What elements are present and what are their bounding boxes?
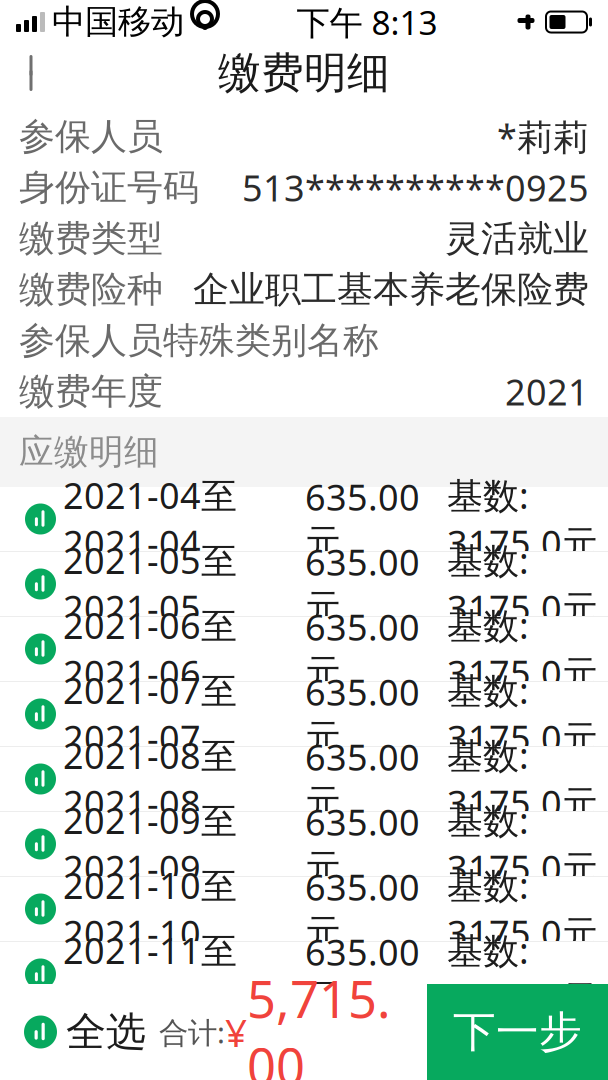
staticText: 基数:3175.0元 [447, 926, 598, 1022]
staticText: 下一步 [453, 1006, 582, 1058]
staticText: 基数:3175.0元 [447, 861, 598, 957]
staticText: 基数:3175.0元 [447, 601, 598, 697]
staticText: 635.00元 [305, 538, 420, 630]
staticText: 下午 8:13 [296, 0, 437, 44]
staticText: 635.00元 [305, 603, 420, 695]
staticText: 635.00元 [305, 473, 420, 565]
button[interactable]: 2021-09至2021-09 [0, 812, 608, 877]
staticText: 全选 [66, 1007, 146, 1056]
button[interactable]: 2021-05至2021-05 [0, 552, 608, 617]
staticText: 635.00元 [305, 798, 420, 890]
staticText: 635.00元 [305, 733, 420, 825]
button[interactable]: 下一步 [427, 984, 608, 1080]
button[interactable]: 2021-08至2021-08 [0, 747, 608, 812]
staticText: 缴费明细 [218, 47, 390, 99]
staticText: 中国移动 [52, 1, 184, 42]
staticText: 缴费类型 [19, 216, 163, 261]
button[interactable]: 返回 [0, 44, 70, 102]
staticText: 5,715.00 [247, 965, 391, 1080]
staticText: 参保人员 [19, 114, 163, 159]
staticText: 基数:3175.0元 [447, 731, 598, 827]
staticText: 缴费年度 [19, 369, 163, 414]
staticText: 2021 [505, 368, 589, 415]
button[interactable]: 2021-06至2021-06 [0, 617, 608, 682]
staticText: 635.00元 [305, 668, 420, 760]
staticText: 基数:3175.0元 [447, 796, 598, 892]
button[interactable]: 2021-11至2021-11 [0, 942, 608, 1007]
staticText: 2021-07至2021-07 [63, 666, 237, 762]
staticText: 2021-04至2021-04 [63, 471, 237, 567]
staticText: 企业职工基本养老保险费 [193, 267, 589, 312]
staticText: 应缴明细 [19, 431, 159, 473]
staticText: 2021-05至2021-05 [63, 536, 237, 632]
staticText: 2021-08至2021-08 [63, 731, 237, 827]
staticText: 513**********0925 [242, 164, 589, 211]
staticText: 参保人员特殊类别名称 [19, 318, 379, 363]
staticText: 2021-11至2021-11 [63, 926, 237, 1022]
staticText: 灵活就业 [445, 216, 589, 261]
button[interactable]: 2021-10至2021-10 [0, 877, 608, 942]
staticText: *莉莉 [497, 113, 589, 160]
staticText: 基数:3175.0元 [447, 471, 598, 567]
staticText: 合计: [159, 1012, 225, 1051]
staticText: ¥ [225, 1006, 247, 1058]
button[interactable]: 全选 [0, 991, 156, 1072]
staticText: 身份证号码 [19, 165, 199, 210]
staticText: 635.00元 [305, 928, 420, 1020]
staticText: 基数:3175.0元 [447, 536, 598, 632]
staticText: 基数:3175.0元 [447, 666, 598, 762]
staticText: 2021-09至2021-09 [63, 796, 237, 892]
staticText: 635.00元 [305, 863, 420, 955]
button[interactable]: 2021-07至2021-07 [0, 682, 608, 747]
staticText: 2021-06至2021-06 [63, 601, 237, 697]
staticText: 2021-10至2021-10 [63, 861, 237, 957]
button[interactable]: 2021-04至2021-04 [0, 487, 608, 552]
staticText: 缴费险种 [19, 267, 163, 312]
